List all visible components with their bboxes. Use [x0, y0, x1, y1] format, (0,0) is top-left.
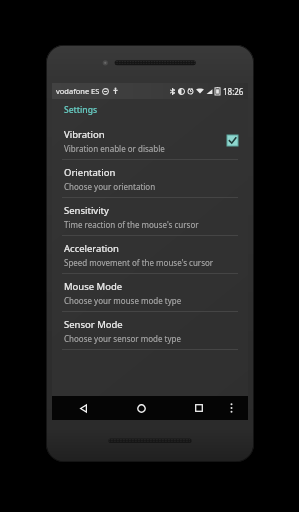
staticText: Choose your sensor mode type	[64, 333, 181, 344]
button[interactable]: Mouse Mode	[52, 274, 248, 311]
button[interactable]: Vibration	[52, 122, 248, 159]
staticText: Sensor Mode	[64, 318, 123, 331]
staticText: Speed movement of the mouse's cursor	[64, 257, 214, 268]
button[interactable]: Back	[72, 397, 94, 419]
button[interactable]: Orientation	[52, 160, 248, 197]
staticText: Choose your mouse mode type	[64, 295, 182, 306]
button[interactable]: More options	[222, 399, 240, 417]
staticText: Sensitivity	[64, 204, 109, 217]
button[interactable]: Recent apps	[188, 397, 210, 419]
staticText: Vibration enable or disable	[64, 143, 165, 154]
staticText: Acceleration	[64, 242, 119, 255]
button[interactable]: Vibration toggle	[227, 135, 238, 146]
staticText: Choose your orientation	[64, 181, 156, 192]
button[interactable]: Sensor Mode	[52, 312, 248, 349]
staticText: Mouse Mode	[64, 280, 123, 293]
staticText: Vibration	[64, 128, 105, 141]
button[interactable]: Acceleration	[52, 236, 248, 273]
staticText: 18:26	[223, 86, 244, 97]
staticText: vodafone ES	[56, 86, 100, 96]
staticText: Time reaction of the mouse's cursor	[64, 219, 199, 230]
button[interactable]: Home	[130, 397, 152, 419]
button[interactable]: Sensitivity	[52, 198, 248, 235]
staticText: Settings	[64, 104, 98, 116]
staticText: Orientation	[64, 166, 116, 179]
